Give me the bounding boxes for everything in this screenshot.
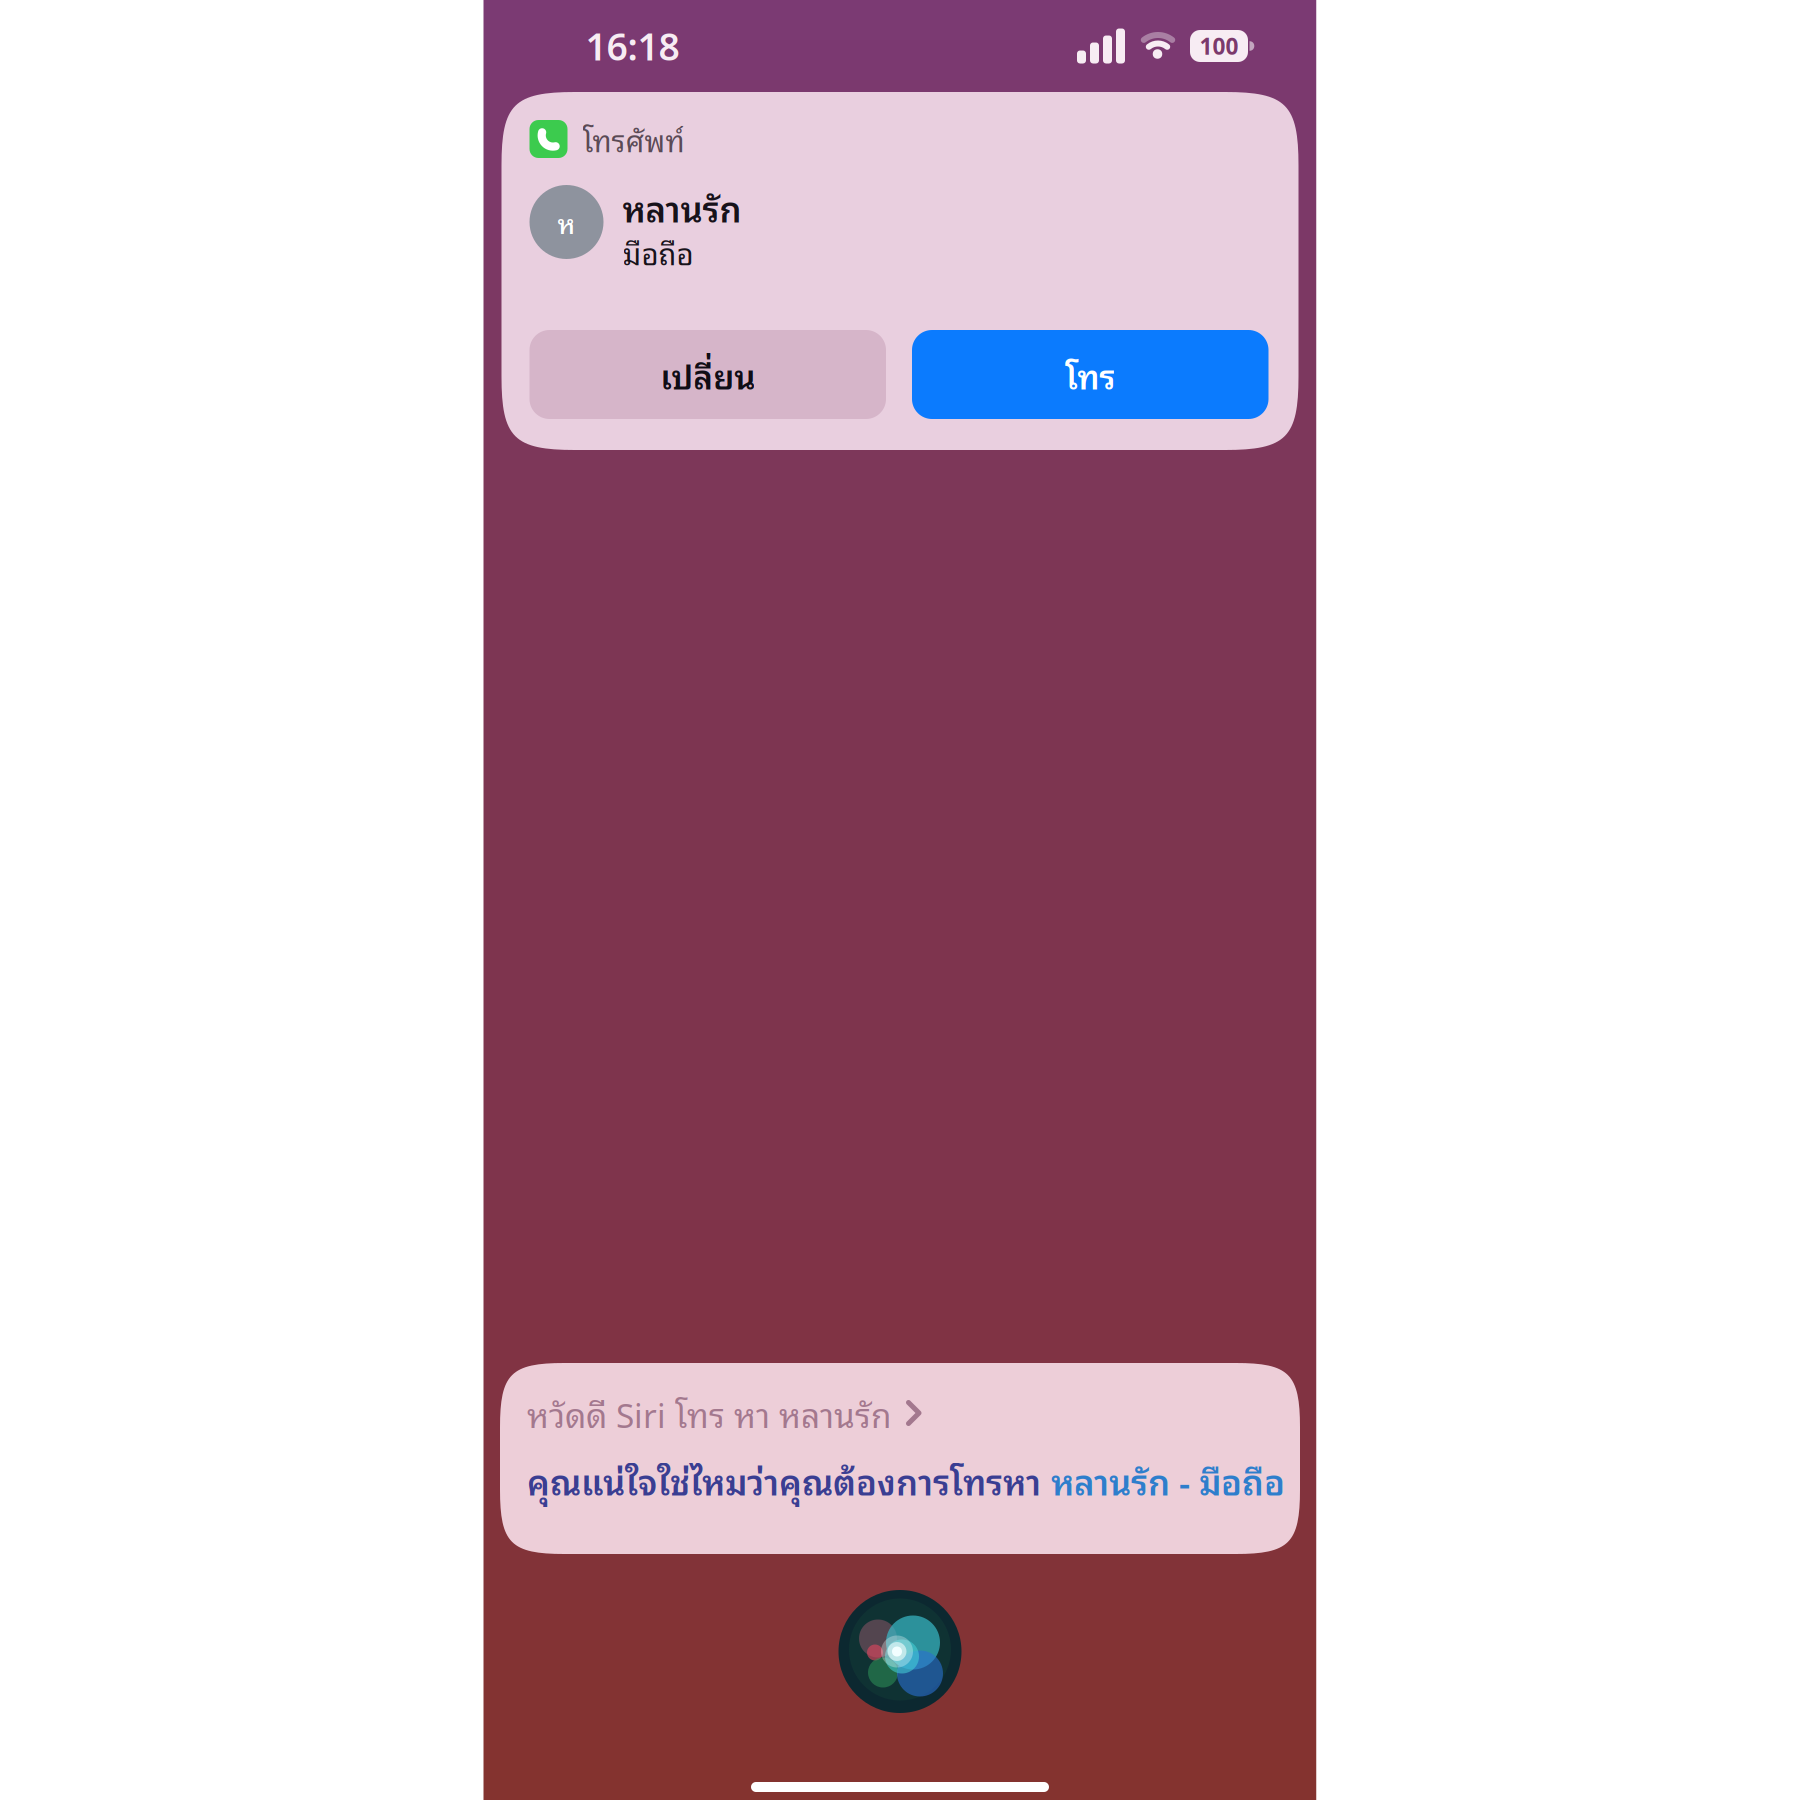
staticText: โทรศัพท์ xyxy=(582,115,684,162)
staticText: 100 xyxy=(1199,31,1238,61)
staticText: หวัดดี Siri โทร หา หลานรัก xyxy=(527,1386,892,1440)
staticText: คุณแน่ใจใช่ไหมว่าคุณต้องการโทรหา xyxy=(527,1452,1041,1508)
button[interactable]: เปลี่ยน xyxy=(529,330,886,419)
button[interactable]: หวัดดี Siri โทร หา หลานรัก xyxy=(527,1389,922,1437)
staticText: มือถือ xyxy=(622,228,693,275)
button[interactable]: Siri xyxy=(838,1590,961,1713)
staticText: หลานรัก xyxy=(622,179,741,235)
button[interactable]: โทร xyxy=(912,330,1268,419)
staticText: 16:18 xyxy=(585,21,679,71)
staticText: ห xyxy=(557,201,575,243)
staticText: เปลี่ยน xyxy=(660,348,755,401)
staticText: หลานรัก - มือถือ xyxy=(1051,1452,1285,1508)
staticText: โทร xyxy=(1065,348,1115,401)
